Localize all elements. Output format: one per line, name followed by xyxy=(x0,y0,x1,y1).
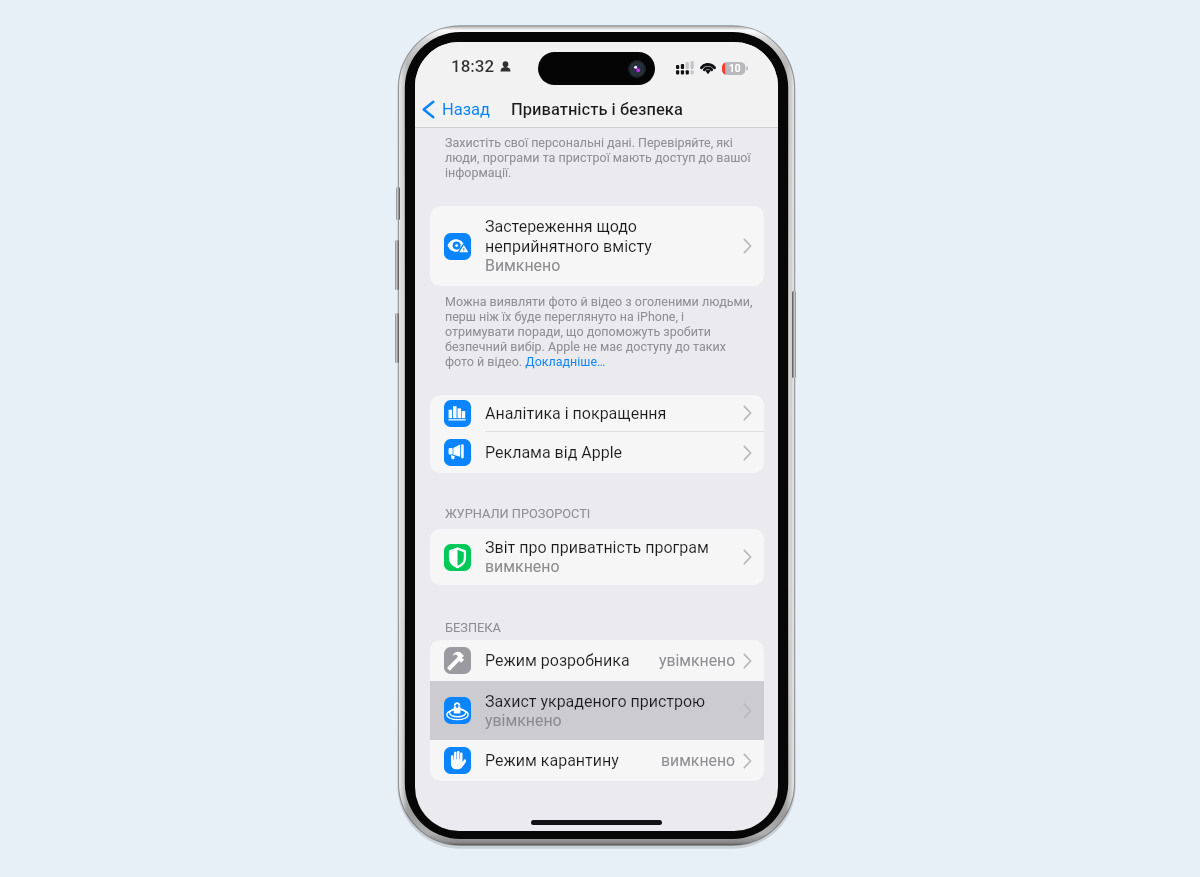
staticText: Вимкнено xyxy=(485,256,561,275)
other: Назад xyxy=(422,100,435,119)
button[interactable]: Аналітика і покращення xyxy=(430,395,764,431)
staticText: Реклама від Apple xyxy=(485,443,623,462)
button[interactable]: Реклама від Apple xyxy=(430,432,764,473)
staticText: вимкнено xyxy=(485,557,560,576)
staticText: Приватність і безпека xyxy=(511,100,683,119)
staticText: Застереження щодо неприйнятного вмісту xyxy=(485,217,663,256)
staticText: 18:32 xyxy=(451,56,495,76)
staticText: Можна виявляти фото й відео з оголеними … xyxy=(445,294,754,369)
staticText: Назад xyxy=(442,100,491,119)
button[interactable]: Застереження щодо неприйнятного вмісту xyxy=(430,206,764,286)
staticText: Аналітика і покращення xyxy=(485,404,667,423)
button[interactable]: Режим розробника xyxy=(430,640,764,681)
staticText: увімкнено xyxy=(485,711,562,730)
button[interactable]: Назад xyxy=(415,95,497,124)
staticText: БЕЗПЕКА xyxy=(445,620,501,635)
button[interactable]: Звіт про приватність програм xyxy=(430,529,764,585)
staticText: Режим розробника xyxy=(485,651,630,670)
button[interactable]: Режим карантину xyxy=(430,740,764,781)
staticText: 10 xyxy=(729,63,741,75)
button[interactable]: Захист украденого пристрою xyxy=(430,681,764,740)
staticText: Звіт про приватність програм xyxy=(485,538,709,557)
staticText: Захист украденого пристрою xyxy=(485,692,706,711)
staticText: ЖУРНАЛИ ПРОЗОРОСТІ xyxy=(445,506,591,521)
staticText: Режим карантину xyxy=(485,751,619,770)
staticText: Захистіть свої персональні дані. Перевір… xyxy=(445,135,754,180)
staticText: увімкнено xyxy=(659,651,736,670)
staticText: вимкнено xyxy=(661,751,736,770)
